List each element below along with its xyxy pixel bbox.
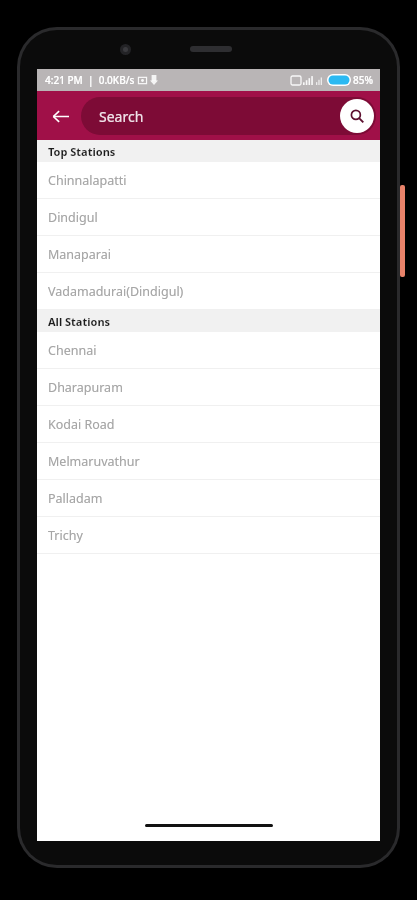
button[interactable]: Top Stations [37,140,380,162]
staticText: Chennai [48,342,97,359]
staticText: Top Stations [48,144,116,159]
staticText: 4:21 PM | 0.0KB/s [45,73,135,87]
staticText: Kodai Road [48,416,115,433]
button[interactable]: All Stations [37,310,380,332]
staticText: Dindigul [48,209,98,226]
button[interactable]: Chennai [37,332,380,368]
button[interactable]: Dharapuram [37,369,380,405]
button[interactable]: Search [81,97,376,135]
button[interactable]: Trichy [37,517,380,553]
button[interactable]: Back [43,99,77,133]
button[interactable]: Palladam [37,480,380,516]
staticText: Chinnalapatti [48,172,127,189]
button[interactable]: Chinnalapatti [37,162,380,198]
staticText: Melmaruvathur [48,453,140,470]
staticText: Trichy [48,527,83,544]
other: Power button [400,185,405,277]
staticText: Dharapuram [48,379,123,396]
button[interactable]: Kodai Road [37,406,380,442]
staticText: Manaparai [48,246,111,263]
staticText: Search [99,107,144,126]
staticText: Palladam [48,490,103,507]
staticText: Vadamadurai(Dindigul) [48,283,184,300]
staticText: All Stations [48,314,111,329]
staticText: 85% [353,73,373,87]
button[interactable]: Vadamadurai(Dindigul) [37,273,380,309]
button[interactable]: Search [340,99,374,133]
button[interactable]: Melmaruvathur [37,443,380,479]
button[interactable]: Dindigul [37,199,380,235]
button[interactable]: Manaparai [37,236,380,272]
